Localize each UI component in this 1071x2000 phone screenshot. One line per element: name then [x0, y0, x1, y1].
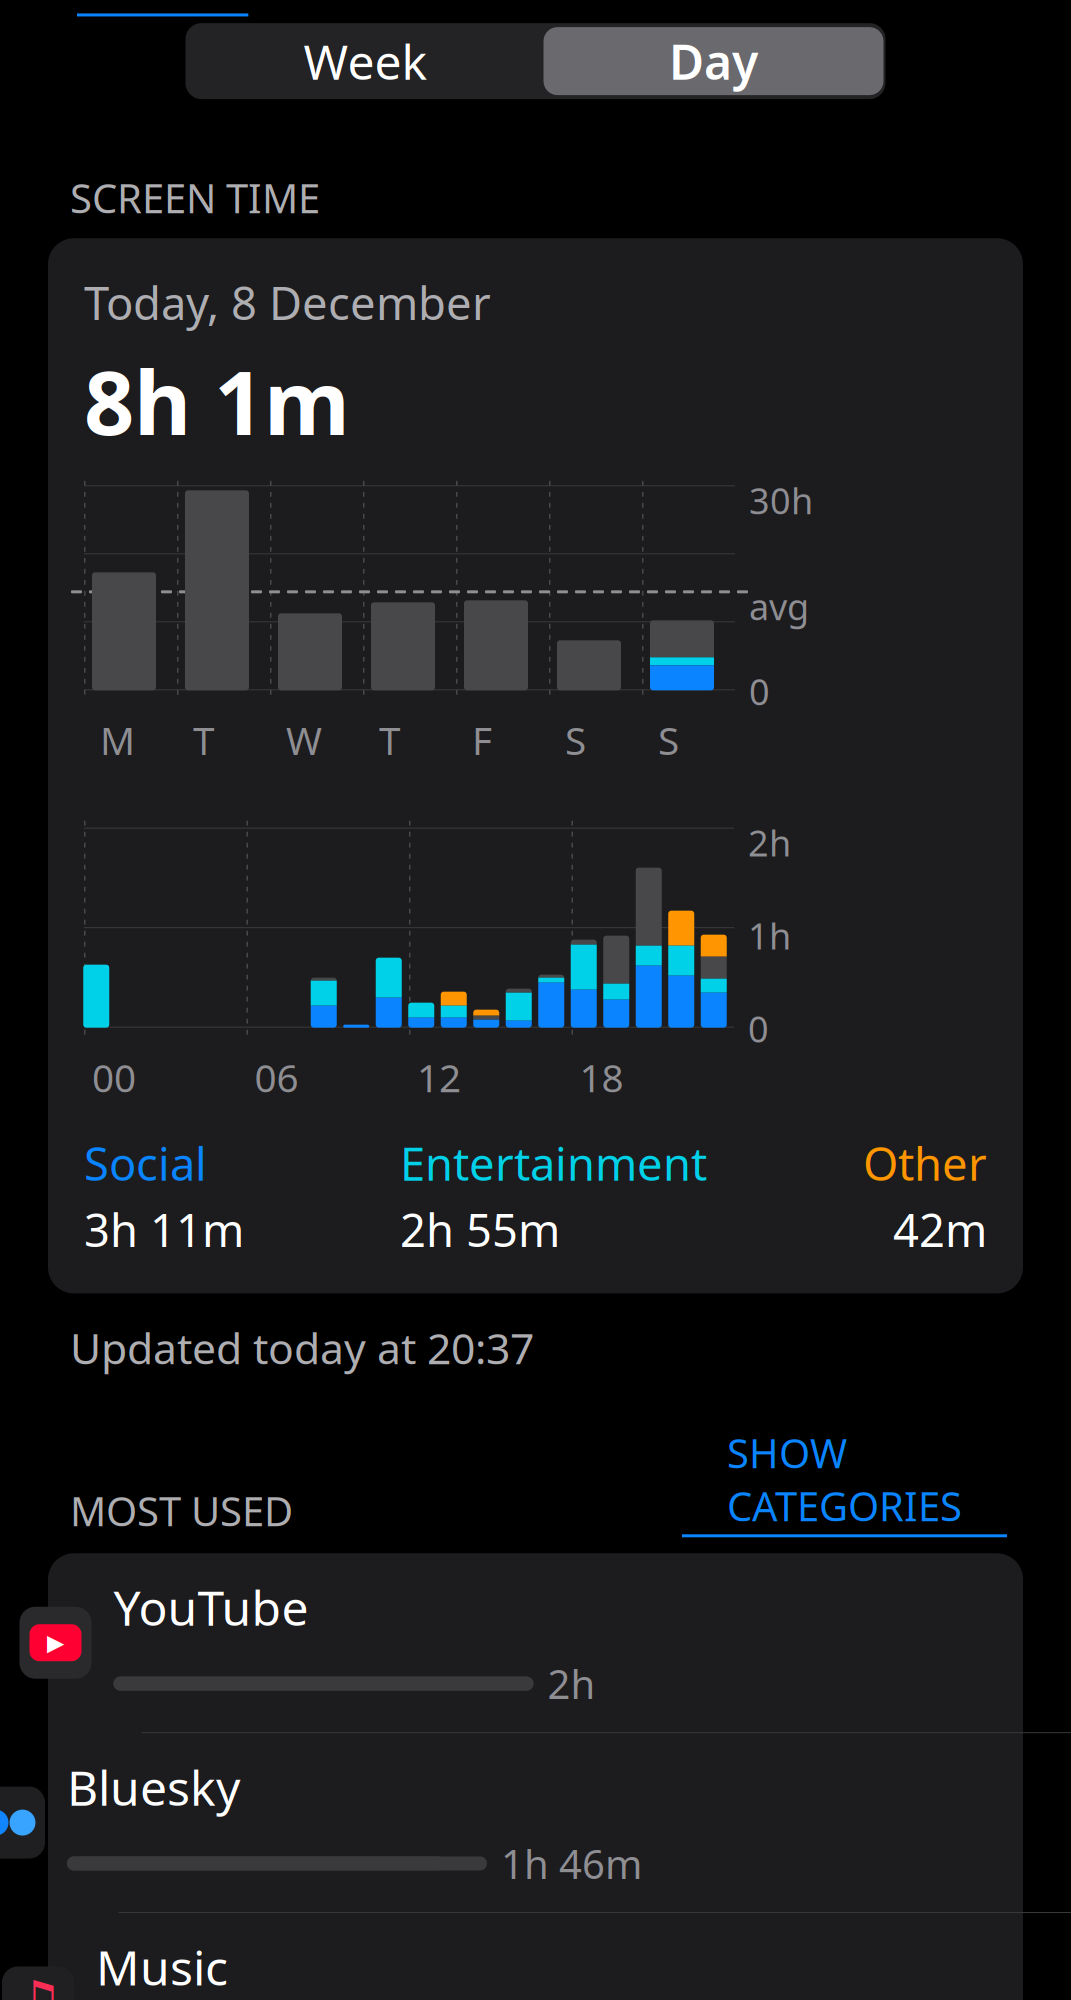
staticText: Social	[84, 1133, 207, 1193]
staticText: 30h	[749, 476, 813, 524]
staticText: 8h 1m	[84, 342, 350, 459]
button[interactable]: Day	[543, 27, 883, 95]
staticText: avg	[749, 582, 809, 630]
staticText: SHOW CATEGORIES	[727, 1426, 962, 1532]
staticText: M	[100, 714, 135, 766]
button[interactable]: ♫	[0, 1913, 1071, 2000]
button[interactable]: SHOW CATEGORIES	[682, 1426, 1071, 1537]
staticText: T	[379, 714, 400, 766]
staticText: 0	[748, 1005, 769, 1052]
staticText: 2h	[748, 819, 791, 866]
button[interactable]: ❮	[0, 0, 248, 16]
staticText: Music	[96, 1935, 228, 1999]
staticText: 18	[579, 1052, 623, 1103]
staticText: S	[565, 714, 586, 766]
staticText: Day	[669, 29, 758, 93]
staticText: S	[658, 714, 679, 766]
staticText: 06	[254, 1052, 298, 1103]
staticText: Updated today at 20:37	[70, 1319, 534, 1376]
staticText: Today, 8 December	[84, 272, 491, 332]
staticText: 2h	[547, 1657, 595, 1710]
staticText: 42m	[893, 1199, 987, 1259]
staticText: F	[472, 714, 492, 766]
staticText: 1h 46m	[501, 1837, 642, 1890]
button[interactable]: Bluesky	[0, 1733, 1071, 1913]
staticText: 2h 55m	[400, 1199, 560, 1259]
staticText: ▶	[47, 1630, 64, 1656]
staticText: W	[286, 714, 322, 766]
staticText: YouTube	[113, 1575, 308, 1639]
staticText: 0	[749, 667, 770, 715]
staticText: Bluesky	[67, 1755, 240, 1819]
staticText: Other	[863, 1133, 987, 1193]
staticText: 12	[417, 1052, 461, 1103]
staticText: SCREEN TIME	[70, 171, 320, 224]
staticText: Entertainment	[400, 1133, 707, 1193]
button[interactable]: ▶	[0, 1553, 1071, 1733]
staticText: 00	[92, 1052, 136, 1103]
staticText: ♫	[11, 1969, 64, 2000]
staticText: T	[193, 714, 214, 766]
button[interactable]: Week	[187, 25, 543, 97]
staticText: Week	[303, 29, 427, 93]
staticText: 1h	[748, 912, 791, 959]
staticText: 3h 11m	[84, 1199, 244, 1259]
staticText: MOST USED	[70, 1484, 293, 1537]
